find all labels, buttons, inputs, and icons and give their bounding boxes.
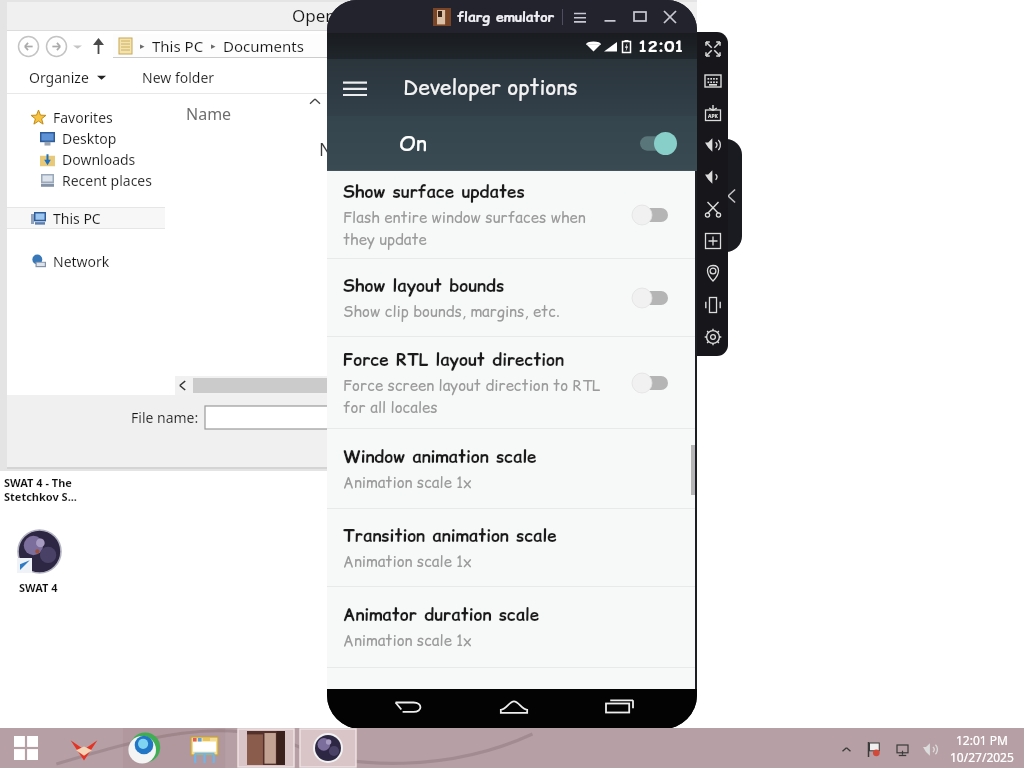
button[interactable]: Developer options on	[640, 132, 677, 155]
button[interactable]: Maximize	[630, 7, 649, 26]
button[interactable]: Full screen	[697, 33, 728, 65]
button[interactable]: Network	[7, 251, 170, 272]
button[interactable]: Show surface updates	[327, 171, 697, 258]
staticText: Animation scale 1x	[343, 630, 472, 651]
staticText: 10/27/2025	[950, 749, 1014, 765]
button[interactable]: Collapse toolbar	[720, 182, 742, 210]
staticText: Animator duration scale	[343, 603, 540, 627]
staticText: Window animation scale	[343, 445, 537, 469]
staticText: 12:01 PM	[956, 732, 1008, 748]
staticText: Show surface updates	[343, 180, 525, 204]
staticText: 12:01	[638, 35, 684, 57]
staticText: Desktop	[62, 129, 117, 148]
staticText: Show clip bounds, margins, etc.	[343, 301, 560, 322]
button[interactable]: Desktop	[7, 128, 170, 149]
button[interactable]: Rotate device	[697, 289, 728, 321]
staticText: SWAT 4	[19, 580, 58, 595]
button[interactable]: Volume down	[697, 161, 728, 193]
staticText: This PC	[53, 209, 101, 228]
button[interactable]: Firefox	[66, 730, 102, 766]
button[interactable]: Organize	[29, 68, 106, 87]
staticText: Animation scale 1x	[343, 551, 472, 572]
button[interactable]: Window animation scale	[327, 429, 697, 508]
button[interactable]: SWAT 4	[300, 729, 356, 767]
button[interactable]: Open navigation menu	[327, 60, 383, 116]
staticText: Show layout bounds	[343, 274, 505, 298]
button[interactable]: Toggle setting	[632, 288, 668, 308]
button[interactable]: Network	[892, 739, 912, 759]
button[interactable]: On	[327, 116, 697, 171]
button[interactable]: Home	[494, 689, 534, 724]
staticText: Force RTL layout direction	[343, 348, 564, 372]
button[interactable]: Start	[8, 730, 44, 766]
button[interactable]: Animator duration scale	[327, 587, 697, 667]
staticText: This PC	[152, 36, 204, 56]
staticText: SWAT 4 - The Stetchkov S...	[4, 475, 77, 504]
button[interactable]: Install APK	[697, 97, 728, 129]
button[interactable]: Photo viewer	[238, 729, 294, 767]
staticText: Transition animation scale	[343, 524, 557, 548]
staticText: Open	[292, 4, 336, 27]
staticText: Name	[186, 103, 232, 125]
button[interactable]: Recent places	[7, 170, 170, 191]
button[interactable]: Screenshot	[697, 193, 728, 225]
button[interactable]: Keyboard	[697, 65, 728, 97]
staticText: Favorites	[53, 108, 113, 127]
staticText: Documents	[223, 36, 304, 56]
button[interactable]: Volume up	[697, 129, 728, 161]
staticText: Animation scale 1x	[343, 472, 472, 493]
button[interactable]: Minimize	[600, 7, 619, 26]
button[interactable]: Close	[660, 7, 679, 26]
button[interactable]: New folder	[142, 68, 215, 87]
staticText: Flash entire window surfaces when they u…	[343, 207, 586, 250]
staticText: flarg emulator	[457, 7, 555, 27]
button[interactable]: Forward	[45, 35, 68, 58]
button[interactable]: Back	[17, 35, 40, 58]
button[interactable]: Transition animation scale	[327, 509, 697, 586]
staticText: Network	[53, 252, 110, 271]
button[interactable]: Action center	[864, 739, 884, 759]
button[interactable]: Menu	[570, 7, 589, 26]
button[interactable]: Favorites	[7, 107, 170, 128]
button[interactable]: Browser	[126, 730, 162, 766]
button[interactable]: Back	[389, 689, 429, 724]
button[interactable]: File Explorer	[186, 730, 222, 766]
button[interactable]: Downloads	[7, 149, 170, 170]
button[interactable]: Volume	[920, 739, 940, 759]
staticText: Organize	[29, 68, 89, 87]
staticText: New folder	[142, 68, 215, 87]
button[interactable]: Toggle setting	[632, 205, 668, 225]
button[interactable]: This PC	[7, 207, 165, 229]
button[interactable]: Recent apps	[599, 689, 639, 724]
staticText: Force screen layout direction to RTL for…	[343, 375, 601, 418]
button[interactable]: Add	[697, 225, 728, 257]
button[interactable]: Show hidden icons	[837, 740, 855, 758]
staticText: ▸	[211, 41, 216, 51]
button[interactable]: Force RTL layout direction	[327, 337, 697, 428]
staticText: Downloads	[62, 150, 136, 169]
staticText: APK	[708, 113, 718, 120]
button[interactable]: Settings	[697, 321, 728, 353]
staticText: Developer options	[403, 73, 578, 102]
staticText: Recent places	[62, 171, 152, 190]
staticText: On	[399, 129, 427, 158]
staticText: Ne	[319, 137, 343, 162]
staticText: File name:	[131, 408, 199, 427]
button[interactable]: Location	[697, 257, 728, 289]
button[interactable]: Show layout bounds	[327, 259, 697, 336]
staticText: ▸	[140, 41, 145, 51]
button[interactable]: Toggle setting	[632, 373, 668, 393]
